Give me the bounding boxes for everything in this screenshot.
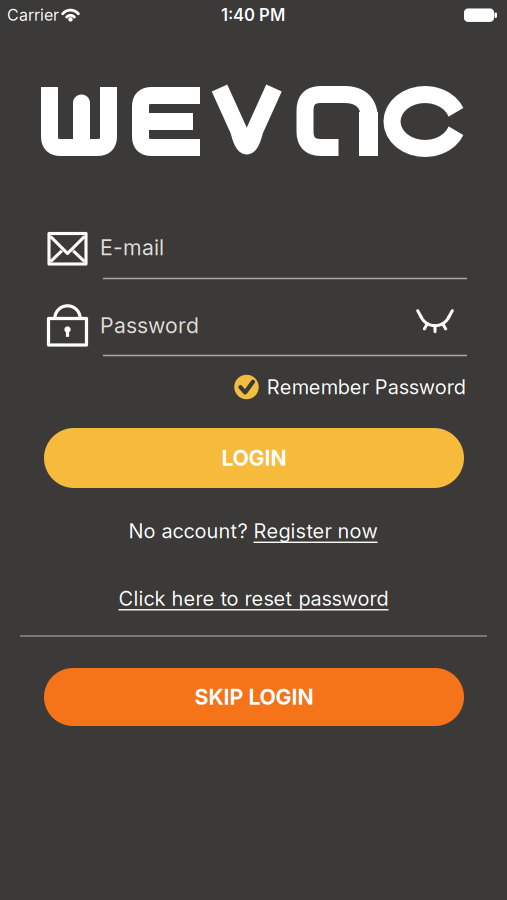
- staticText: Remember Password: [267, 375, 466, 399]
- staticText: LOGIN: [221, 445, 286, 471]
- button[interactable]: SKIP LOGIN: [44, 668, 464, 726]
- button[interactable]: Click here to reset password: [118, 586, 388, 611]
- button[interactable]: Remember Password: [234, 375, 466, 399]
- staticText: 1:40 PM: [221, 5, 285, 25]
- button[interactable]: LOGIN: [44, 428, 464, 488]
- staticText: Click here to reset password: [118, 586, 388, 611]
- staticText: E-mail: [100, 235, 164, 260]
- staticText: Carrier: [7, 5, 59, 25]
- button[interactable]: Show password: [413, 300, 457, 336]
- button[interactable]: No account? Register now: [128, 519, 377, 543]
- staticText: Password: [100, 313, 199, 338]
- staticText: SKIP LOGIN: [194, 684, 313, 710]
- staticText: No account? Register now: [128, 519, 377, 543]
